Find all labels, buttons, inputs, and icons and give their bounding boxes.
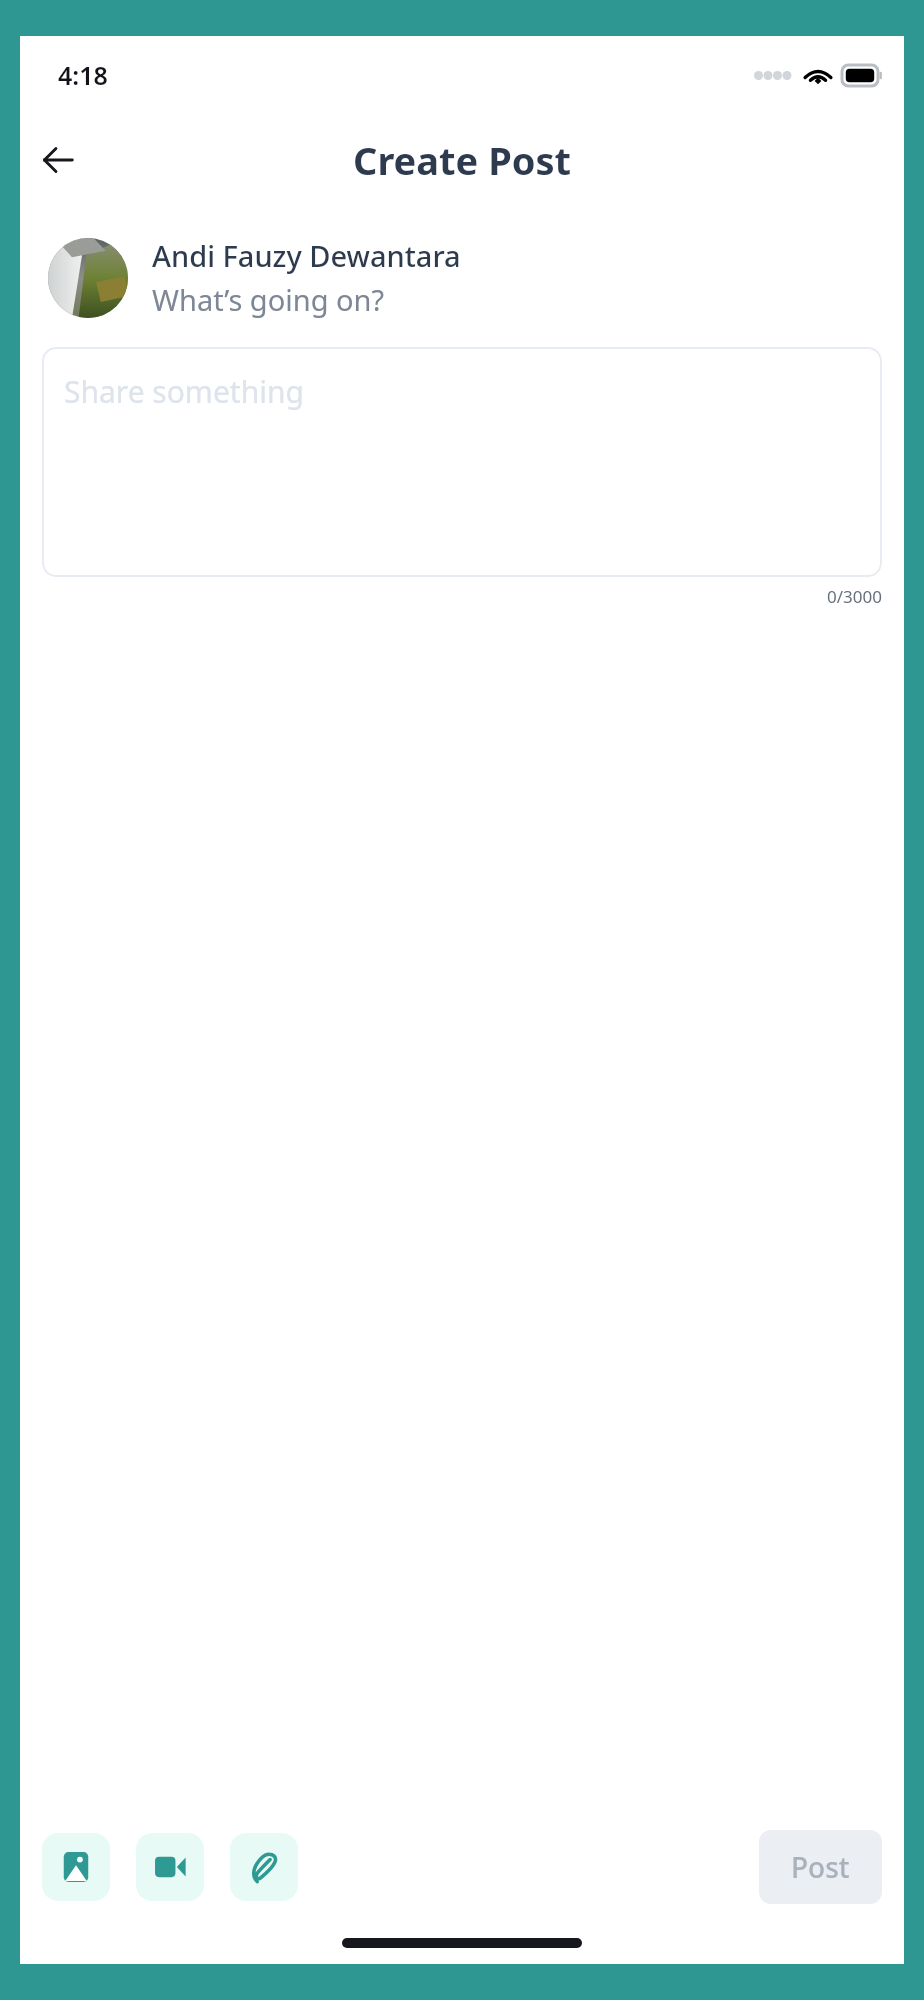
staticText: Create Post bbox=[353, 134, 572, 186]
staticText: Post bbox=[791, 1848, 850, 1886]
staticText: What’s going on? bbox=[152, 280, 385, 319]
staticText: Share something bbox=[64, 371, 304, 412]
button[interactable] bbox=[48, 238, 128, 318]
button[interactable]: Share something bbox=[42, 347, 882, 577]
button[interactable]: Add image bbox=[42, 1833, 110, 1901]
button[interactable]: Attach file bbox=[230, 1833, 298, 1901]
staticText: Andi Fauzy Dewantara bbox=[152, 236, 461, 275]
button[interactable]: Add video bbox=[136, 1833, 204, 1901]
staticText: 4:18 bbox=[58, 58, 108, 92]
staticText: 0/3000 bbox=[827, 585, 882, 608]
button[interactable]: Post bbox=[759, 1830, 882, 1904]
button[interactable]: Back bbox=[30, 132, 86, 188]
